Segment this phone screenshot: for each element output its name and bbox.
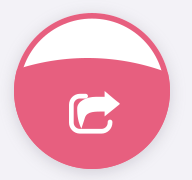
button[interactable]: Share	[0, 0, 192, 180]
